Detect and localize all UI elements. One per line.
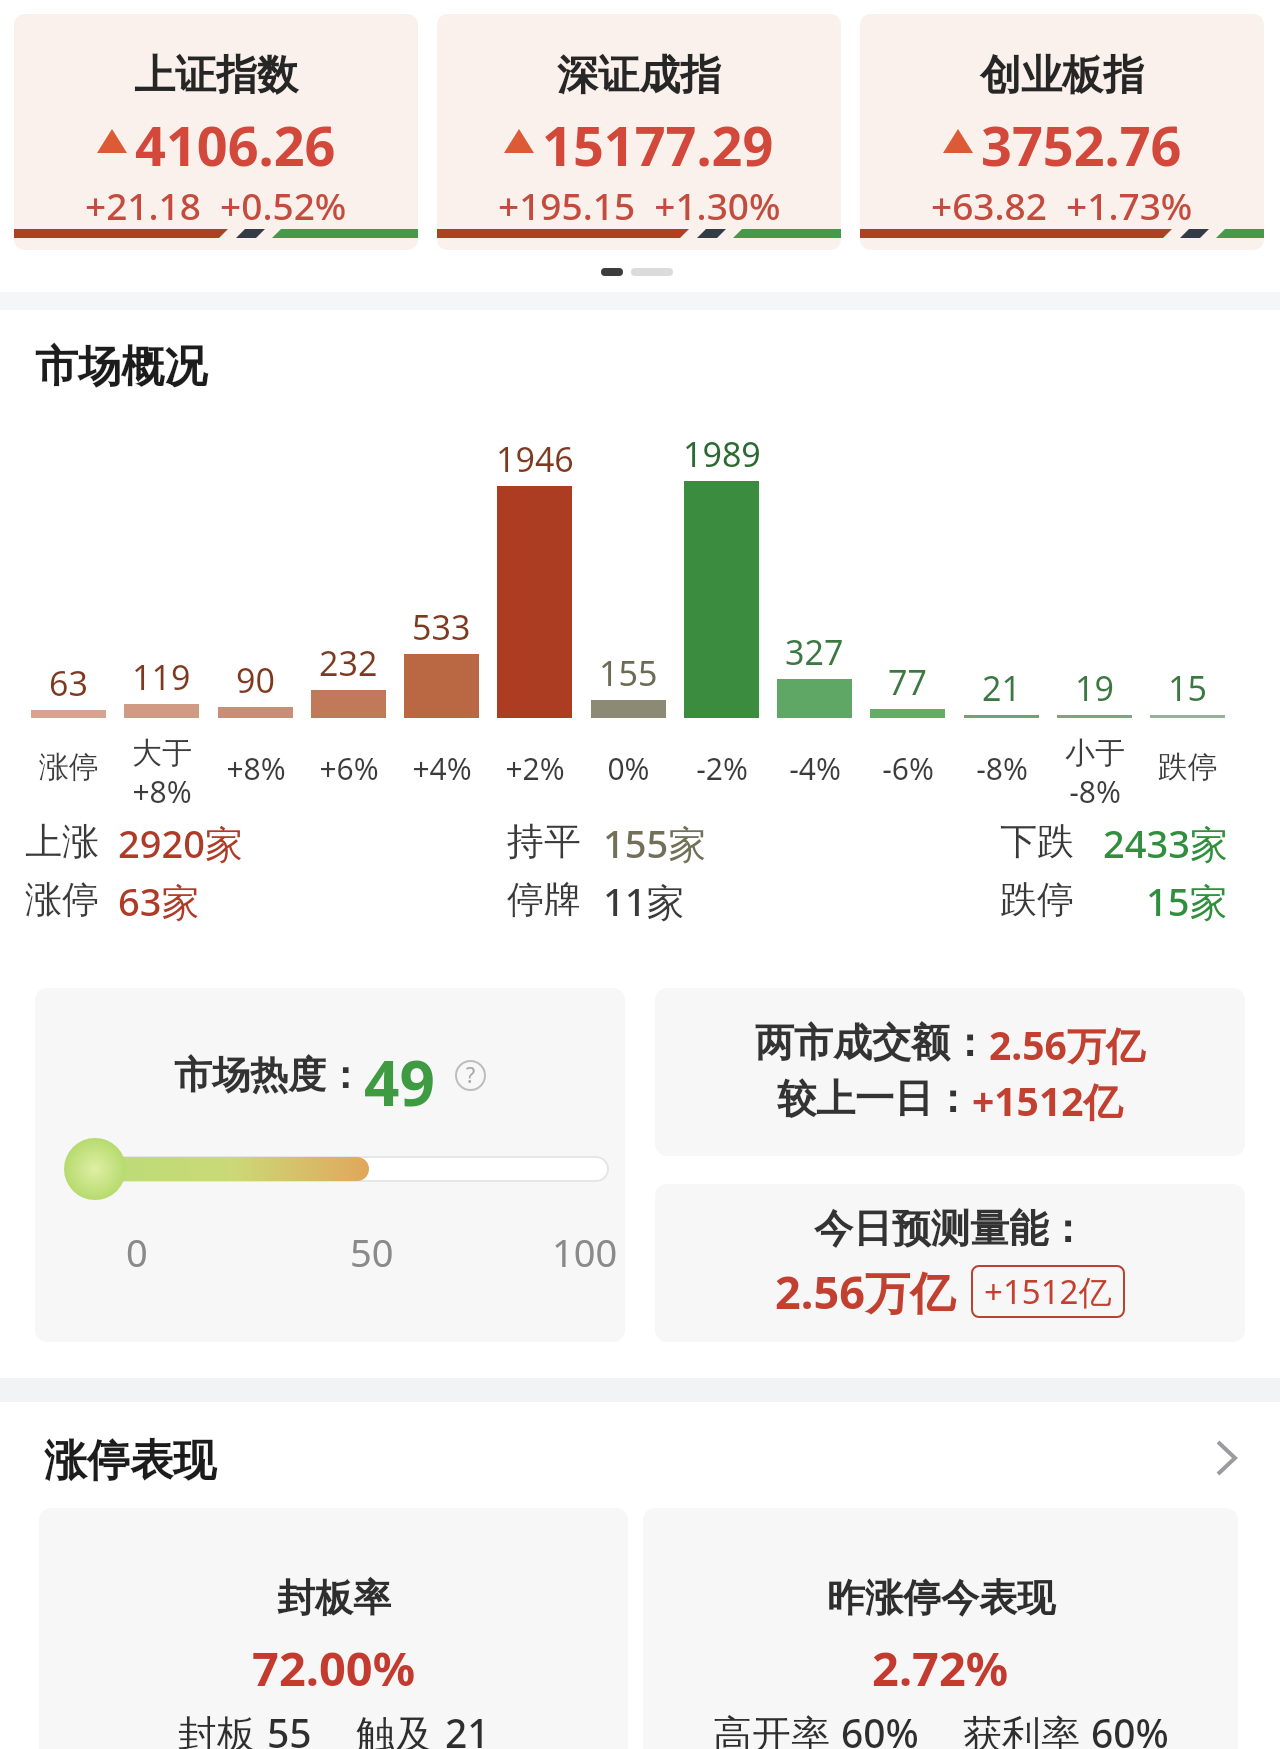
staticText: 较上一日： (777, 1074, 972, 1123)
staticText: +1512亿 (972, 1074, 1123, 1127)
button[interactable]: 市场热度： (35, 988, 625, 1342)
staticText: 创业板指 (980, 50, 1144, 102)
staticText: +1512亿 (984, 1269, 1112, 1314)
staticText: 跌停 (1000, 876, 1074, 923)
staticText: 60% (1091, 1706, 1169, 1749)
staticText: 327 (785, 629, 844, 675)
staticText: 21 (445, 1706, 490, 1749)
staticText: 小于 -8% (1065, 734, 1125, 812)
staticText: 155 (599, 650, 658, 696)
staticText: 封板 (178, 1706, 267, 1749)
staticText: 2.72% (872, 1636, 1009, 1700)
staticText: 上涨 (25, 818, 99, 865)
staticText: 涨停 (39, 748, 99, 786)
staticText: 63家 (118, 875, 200, 927)
staticText: 90 (236, 657, 275, 703)
staticText: -8% (976, 748, 1028, 789)
staticText: 77 (888, 659, 927, 705)
staticText: -2% (696, 748, 748, 789)
staticText: +8% (226, 748, 286, 789)
staticText: 触及 (356, 1706, 445, 1749)
staticText: 两市成交额： (755, 1018, 989, 1067)
button[interactable]: 创业板指 (860, 14, 1264, 250)
staticText: ? (466, 1061, 476, 1090)
staticText: 跌停 (1158, 748, 1218, 786)
staticText: 2920家 (118, 817, 243, 869)
staticText: +4% (412, 748, 472, 789)
button[interactable]: 封板率 (39, 1508, 628, 1749)
staticText: 63 (49, 660, 88, 706)
staticText: 19 (1075, 665, 1114, 711)
staticText: +195.15 +1.30% (498, 180, 781, 230)
staticText: 2433家 (1103, 817, 1228, 869)
staticText: 下跌 (1000, 818, 1074, 865)
staticText: +63.82 +1.73% (931, 180, 1193, 230)
button[interactable]: 涨停表现 (0, 1426, 1280, 1486)
staticText: 3752.76 (981, 108, 1182, 174)
staticText: 封板率 (277, 1574, 391, 1622)
staticText: 大于 +8% (132, 734, 192, 812)
staticText: 49 (364, 1040, 435, 1110)
staticText: 4106.26 (135, 108, 336, 174)
staticText: 涨停 (25, 876, 99, 923)
button[interactable]: 两市成交额： (655, 988, 1245, 1156)
staticText: 0% (607, 748, 650, 789)
staticText: 深证成指 (557, 50, 721, 102)
staticText: 11家 (603, 875, 685, 927)
button[interactable]: 上证指数 (14, 14, 418, 250)
staticText: 1989 (683, 431, 761, 477)
staticText: 0 (126, 1226, 148, 1278)
staticText: +2% (505, 748, 565, 789)
staticText: 15177.29 (542, 108, 774, 174)
staticText: 55 (267, 1706, 312, 1749)
button[interactable]: 昨涨停今表现 (643, 1508, 1238, 1749)
staticText: 155家 (603, 817, 707, 869)
button[interactable]: ? (455, 1060, 486, 1091)
staticText: 119 (132, 654, 191, 700)
staticText: 533 (412, 604, 471, 650)
staticText: +6% (319, 748, 379, 789)
button[interactable]: 深证成指 (437, 14, 841, 250)
staticText: 2.56万亿 (989, 1018, 1145, 1071)
staticText: -6% (882, 748, 934, 789)
button[interactable]: 今日预测量能： (655, 1184, 1245, 1342)
staticText: 今日预测量能： (814, 1204, 1087, 1253)
staticText: 21 (982, 665, 1021, 711)
staticText: 60% (841, 1706, 919, 1749)
staticText: 市场热度： (174, 1051, 364, 1099)
staticText: 15家 (1146, 875, 1228, 927)
staticText: 高开率 (713, 1706, 841, 1749)
staticText: 100 (552, 1226, 618, 1278)
staticText: 1946 (496, 436, 574, 482)
staticText: 持平 (507, 818, 581, 865)
staticText: 昨涨停今表现 (827, 1574, 1055, 1622)
staticText: 72.00% (252, 1636, 416, 1700)
staticText: +21.18 +0.52% (85, 180, 347, 230)
staticText: 15 (1168, 665, 1207, 711)
staticText: 上证指数 (134, 50, 298, 102)
staticText: -4% (789, 748, 841, 789)
staticText: 涨停表现 (44, 1434, 216, 1488)
staticText: 2.56万亿 (775, 1261, 955, 1322)
staticText: 232 (319, 640, 378, 686)
staticText: 市场概况 (35, 340, 207, 394)
staticText: 停牌 (507, 876, 581, 923)
staticText: 50 (350, 1226, 394, 1278)
staticText: 获利率 (963, 1706, 1091, 1749)
